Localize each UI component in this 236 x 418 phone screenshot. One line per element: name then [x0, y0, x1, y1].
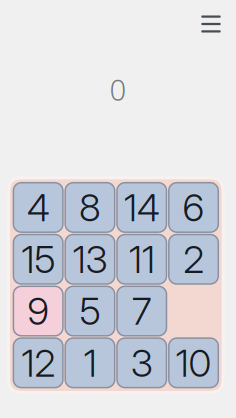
- staticText: 0: [109, 70, 126, 109]
- staticText: 7: [132, 288, 152, 334]
- staticText: 10: [175, 340, 211, 386]
- staticText: 5: [79, 288, 100, 334]
- staticText: 11: [129, 236, 155, 282]
- button[interactable]: 9: [13, 286, 63, 336]
- button[interactable]: 14: [117, 183, 166, 232]
- button[interactable]: 6: [169, 183, 218, 232]
- staticText: 15: [21, 236, 55, 282]
- button[interactable]: 5: [65, 286, 115, 336]
- staticText: 12: [21, 340, 55, 386]
- button[interactable]: Menu: [196, 10, 226, 38]
- button[interactable]: 7: [117, 286, 166, 336]
- button[interactable]: 13: [65, 234, 115, 284]
- staticText: 1: [83, 340, 96, 386]
- button[interactable]: 4: [13, 183, 63, 232]
- button[interactable]: 8: [65, 183, 115, 232]
- staticText: 6: [182, 184, 204, 230]
- staticText: 8: [79, 184, 101, 230]
- button[interactable]: 15: [13, 234, 63, 284]
- staticText: 3: [131, 340, 153, 386]
- button[interactable]: 3: [117, 338, 166, 388]
- button[interactable]: 12: [13, 338, 63, 388]
- button[interactable]: 10: [169, 338, 218, 388]
- staticText: 9: [27, 288, 49, 334]
- button[interactable]: 1: [65, 338, 115, 388]
- staticText: 14: [124, 184, 160, 230]
- staticText: 13: [72, 236, 107, 282]
- button[interactable]: 11: [117, 234, 166, 284]
- staticText: 4: [27, 184, 50, 230]
- staticText: 2: [183, 236, 204, 282]
- button[interactable]: 2: [169, 234, 218, 284]
